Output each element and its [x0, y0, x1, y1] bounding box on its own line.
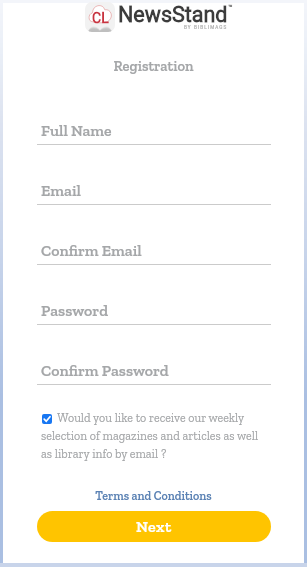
button[interactable]: Terms and Conditions [3, 489, 304, 503]
staticText: Full Name [41, 121, 112, 140]
staticText: CL [92, 10, 110, 26]
button[interactable]: Next [37, 511, 271, 542]
staticText: Email [41, 181, 81, 200]
staticText: Confirm Email [41, 241, 142, 260]
staticText: BY BIBLIMAGS [184, 25, 228, 30]
staticText: Password [41, 301, 109, 320]
staticText: NewsStand [118, 2, 228, 27]
staticText: Registration [3, 57, 304, 74]
staticText: Next [136, 517, 172, 536]
staticText: ™ [228, 4, 233, 12]
staticText: Confirm Password [41, 361, 169, 380]
button[interactable]: Would you like to receive our weekly sel… [41, 411, 259, 461]
staticText: Would you like to receive our weekly sel… [41, 411, 259, 461]
